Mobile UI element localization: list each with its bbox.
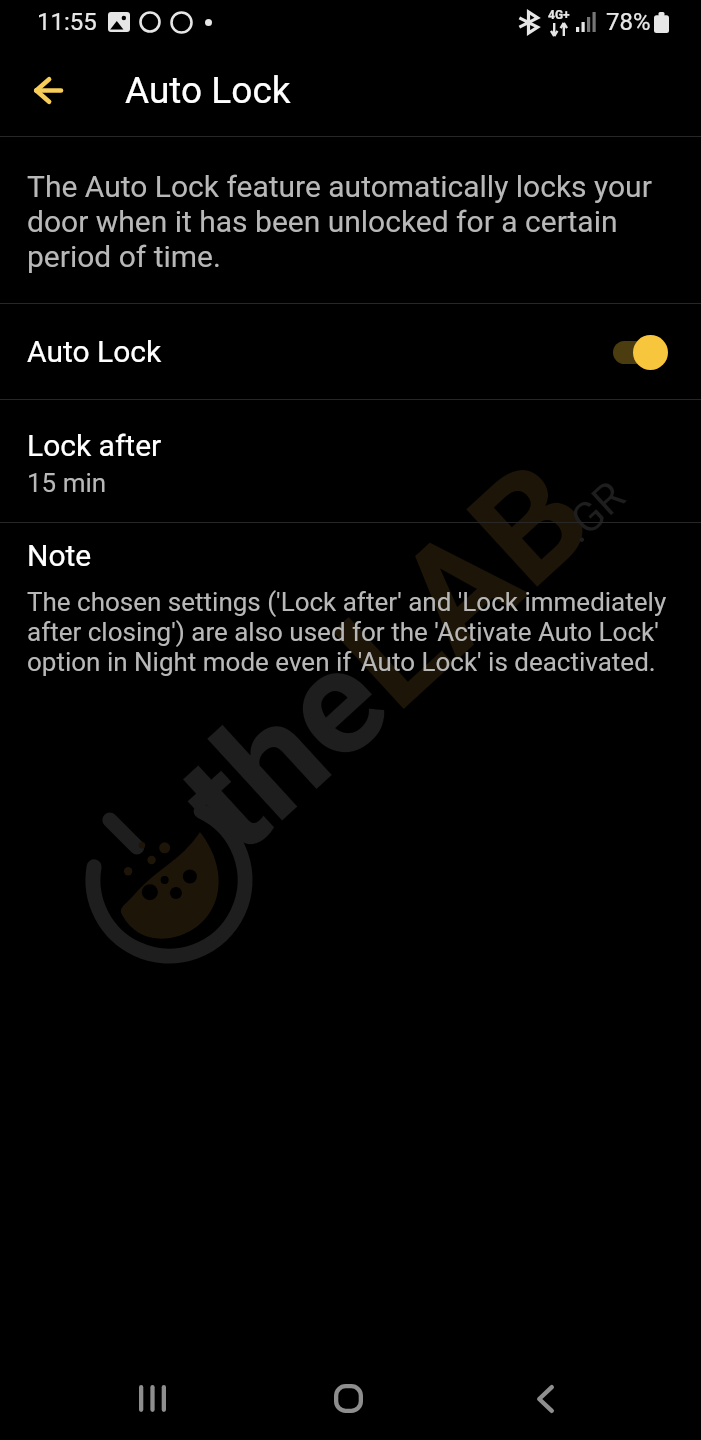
button[interactable]: Lock after [0,400,701,522]
staticText: .GR [553,471,635,552]
staticText: The Auto Lock feature automatically lock… [27,169,652,274]
button[interactable]: Home [250,1357,447,1440]
staticText: Auto Lock [125,69,291,112]
button[interactable]: Recent apps [54,1357,250,1440]
staticText: Auto Lock [27,334,162,369]
staticText: 78% [606,8,651,36]
button[interactable]: Back [447,1357,644,1440]
staticText: LAB [304,428,625,742]
staticText: Lock after [27,428,162,463]
button[interactable]: Auto Lock [612,330,668,374]
staticText: Note [27,538,92,573]
button[interactable]: Auto Lock [0,304,701,399]
staticText: 11:55 [37,8,97,36]
staticText: the [147,615,421,886]
staticText: The chosen settings ('Lock after' and 'L… [27,587,667,677]
staticText: 15 min [27,468,107,498]
staticText: 4G+ [548,8,570,22]
button[interactable]: Navigate up [20,44,75,136]
